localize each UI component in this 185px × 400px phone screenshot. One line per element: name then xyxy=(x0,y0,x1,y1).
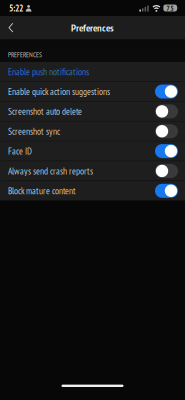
staticText: PREFERENCES xyxy=(8,50,42,59)
staticText: Block mature content xyxy=(8,185,76,197)
staticText: Face ID xyxy=(8,145,32,157)
staticText: Enable quick action suggestions xyxy=(8,85,110,98)
staticText: Screenshot auto delete xyxy=(8,105,82,117)
staticText: Enable push notifications xyxy=(8,66,89,78)
staticText: Preferences xyxy=(71,21,114,34)
button[interactable]: Face ID xyxy=(0,141,185,161)
staticText: Screenshot sync xyxy=(8,125,60,137)
button[interactable]: Screenshot sync xyxy=(0,121,185,141)
button[interactable]: Block mature content xyxy=(0,181,185,200)
button[interactable]: Enable push notifications xyxy=(0,62,185,81)
button[interactable]: Screenshot auto delete xyxy=(0,102,185,121)
staticText: Always send crash reports xyxy=(8,165,93,177)
button[interactable]: Always send crash reports xyxy=(0,161,185,181)
button[interactable]: Back xyxy=(0,16,16,40)
staticText: 5:22 xyxy=(9,2,23,14)
button[interactable]: Enable quick action suggestions xyxy=(0,82,185,101)
staticText: 75 xyxy=(166,3,174,13)
